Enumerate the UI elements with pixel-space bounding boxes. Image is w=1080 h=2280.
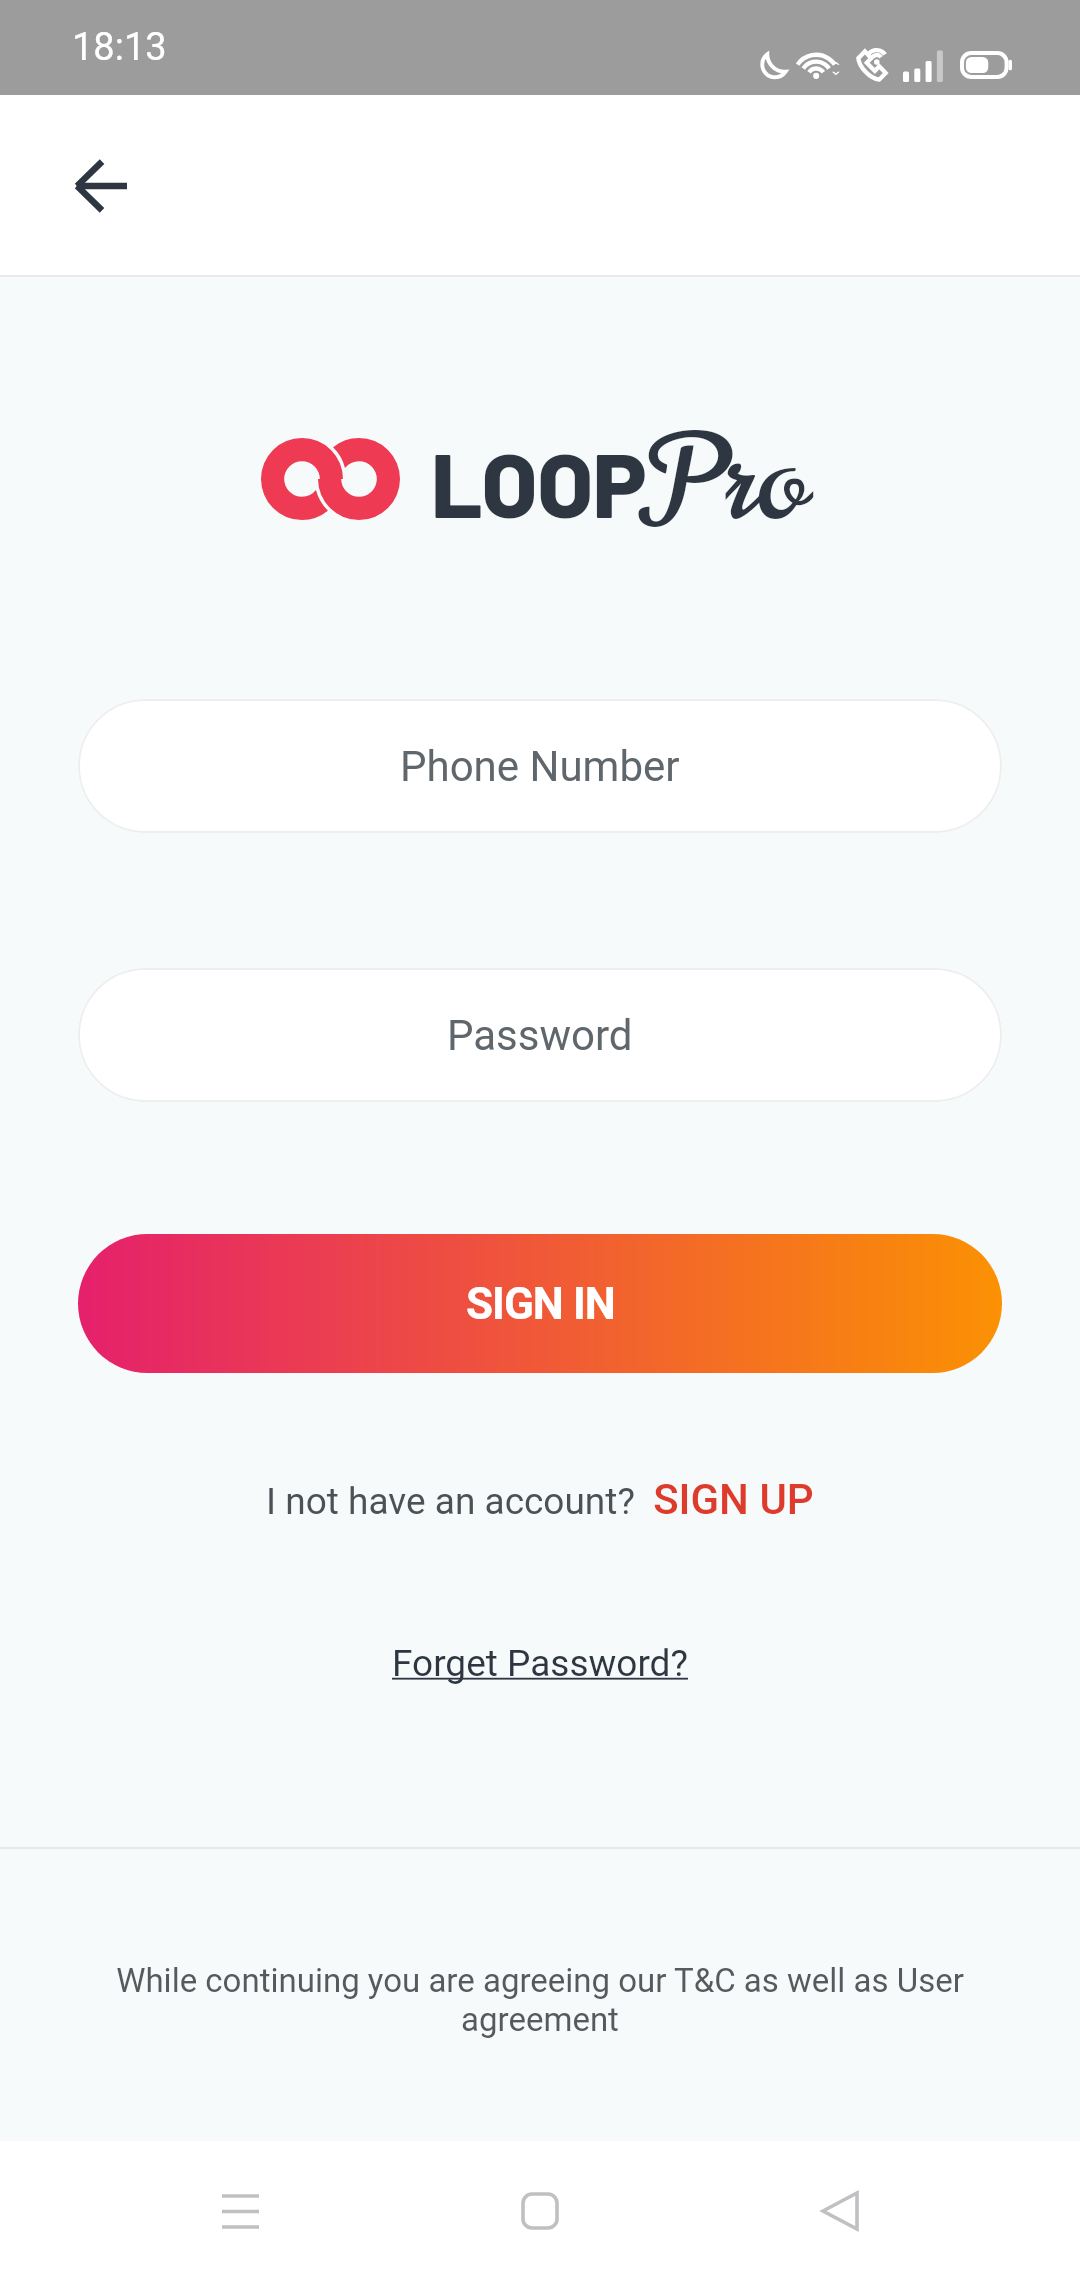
button[interactable]: Recent apps [180, 2151, 300, 2271]
button[interactable]: Back [44, 129, 158, 243]
button[interactable]: Phone Number [78, 699, 1002, 833]
staticText: Password [447, 1011, 633, 1060]
staticText: I not have an account? SIGN UP [266, 1475, 814, 1524]
staticText: 18:13 [72, 25, 167, 70]
button[interactable]: Forget Password? [392, 1642, 688, 1685]
staticText: Phone Number [400, 742, 680, 791]
button[interactable]: Back [780, 2151, 900, 2271]
staticText: Pro [646, 398, 806, 561]
button[interactable]: I not have an account? SIGN UP [0, 1475, 1080, 1524]
button[interactable]: Home [480, 2151, 600, 2271]
staticText: SIGN IN [466, 1278, 615, 1330]
staticText: LOOP [431, 428, 647, 536]
button[interactable]: SIGN IN [78, 1234, 1002, 1373]
staticText: Forget Password? [392, 1642, 688, 1685]
button[interactable]: Password [78, 968, 1002, 1102]
staticText: While continuing you are agreeing our T&… [100, 1961, 980, 2039]
